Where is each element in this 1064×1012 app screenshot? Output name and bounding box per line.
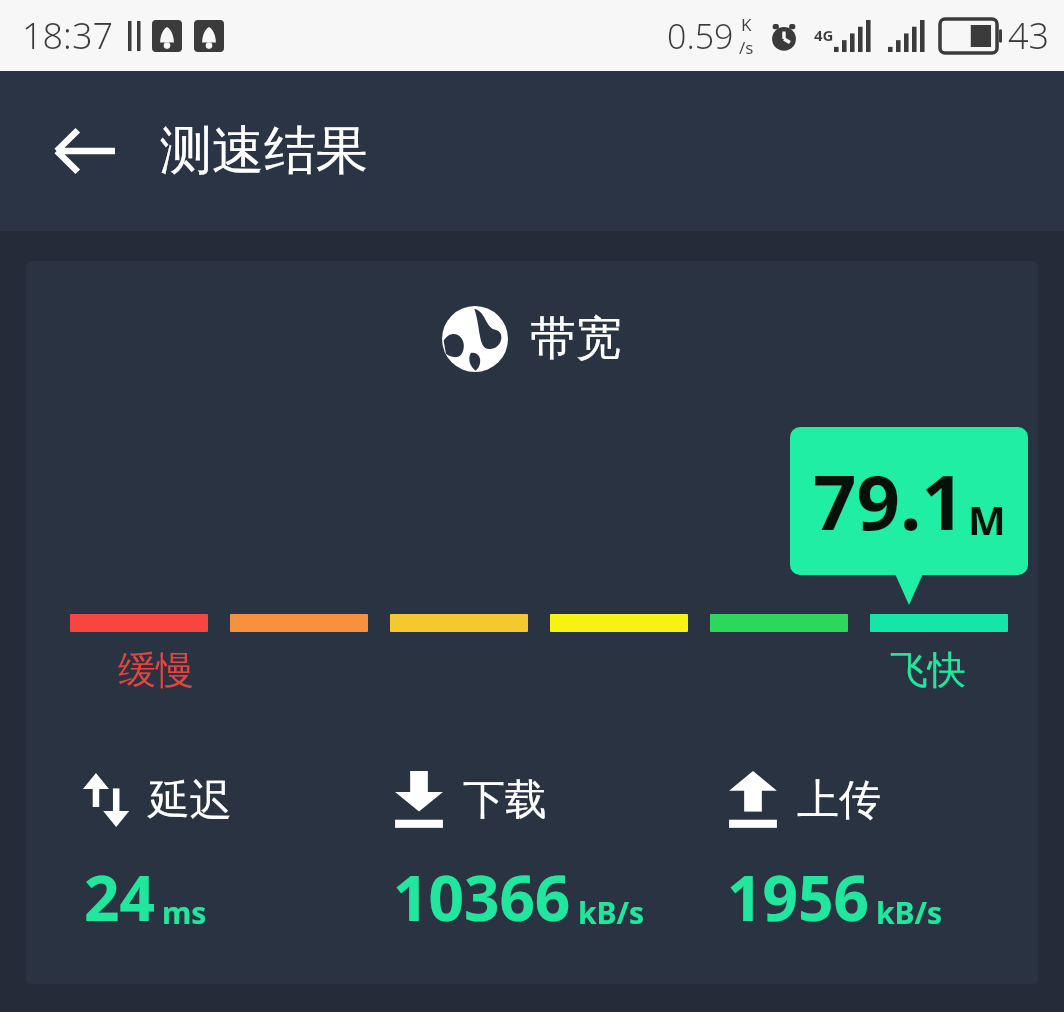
staticText: 缓慢: [118, 646, 194, 694]
staticText: 4G: [814, 25, 834, 45]
staticText: 上传: [797, 774, 881, 827]
staticText: 18:37: [22, 11, 114, 60]
staticText: M: [968, 492, 1006, 546]
staticText: 43: [1008, 11, 1050, 60]
staticText: 飞快: [890, 646, 966, 694]
staticText: K: [741, 13, 752, 36]
staticText: 下载: [463, 774, 547, 827]
staticText: 24: [84, 855, 155, 939]
staticText: kB/s: [876, 892, 943, 933]
staticText: 10366: [393, 855, 571, 939]
staticText: 0.59: [667, 13, 734, 59]
staticText: /s: [739, 36, 754, 59]
button[interactable]: 下载: [393, 771, 727, 939]
staticText: 79.1: [813, 449, 965, 553]
staticText: 1956: [727, 855, 869, 939]
staticText: 延迟: [148, 774, 232, 827]
staticText: 带宽: [530, 310, 622, 368]
button[interactable]: Back: [34, 101, 134, 201]
button[interactable]: 延迟: [84, 771, 393, 939]
staticText: kB/s: [578, 892, 645, 933]
staticText: ms: [162, 892, 207, 933]
button[interactable]: 上传: [727, 771, 1012, 939]
staticText: 测速结果: [160, 118, 368, 184]
